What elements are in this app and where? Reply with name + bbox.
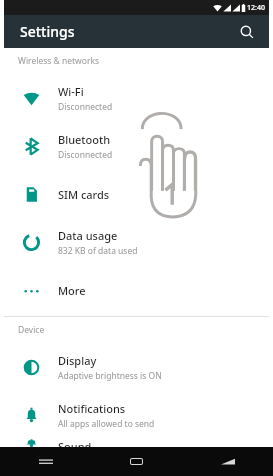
button[interactable]: Back — [0, 447, 91, 476]
staticText: All apps allowed to send — [58, 418, 155, 430]
staticText: Data usage — [58, 228, 118, 243]
staticText: Sound — [58, 439, 92, 447]
button[interactable]: Home — [91, 447, 182, 476]
staticText: 832 KB of data used — [58, 245, 138, 257]
button[interactable]: Bluetooth — [4, 122, 269, 170]
button[interactable]: Recent apps — [182, 447, 273, 476]
staticText: More — [58, 283, 86, 298]
button[interactable]: Settings — [4, 15, 269, 48]
button[interactable]: Sound — [4, 439, 269, 447]
button[interactable]: More — [4, 266, 269, 314]
staticText: Bluetooth — [58, 132, 111, 147]
button[interactable]: Display — [4, 343, 269, 391]
button[interactable]: Notifications — [4, 391, 269, 439]
staticText: SIM cards — [58, 187, 110, 202]
staticText: Device — [18, 324, 45, 336]
staticText: Notifications — [58, 401, 126, 416]
staticText: Settings — [20, 22, 75, 41]
staticText: Display — [58, 353, 97, 368]
staticText: 12:40 — [247, 3, 265, 13]
button[interactable]: Data usage — [4, 218, 269, 266]
staticText: Wireless & networks — [18, 55, 100, 67]
staticText: Wi-Fi — [58, 84, 84, 99]
button[interactable]: Wi-Fi — [4, 74, 269, 122]
button[interactable]: Search — [235, 20, 259, 44]
staticText: Disconnected — [58, 149, 113, 161]
button[interactable]: SIM cards — [4, 170, 269, 218]
staticText: Adaptive brightness is ON — [58, 370, 162, 382]
staticText: Disconnected — [58, 101, 113, 113]
